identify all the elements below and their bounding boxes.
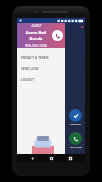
button[interactable]: Home (47, 154, 55, 162)
staticText: PRIVACY & TERMS (21, 56, 49, 60)
button[interactable]: SEND LOGS (17, 66, 65, 71)
button[interactable]: PRIVACY & TERMS (17, 55, 65, 60)
button[interactable]: Back (28, 154, 36, 162)
button[interactable]: AGENCY (17, 23, 65, 48)
button[interactable]: CHECK IN (69, 109, 82, 126)
button[interactable]: Call agency (52, 30, 63, 41)
button[interactable]: CALL NOW (69, 132, 82, 149)
staticText: AGENCY (31, 24, 42, 28)
staticText: LOGOUT (21, 78, 35, 82)
staticText: 909-555-1234 (25, 43, 47, 48)
staticText: SEND LOGS (21, 67, 39, 71)
button[interactable]: Recents (66, 154, 74, 162)
staticText: Acme Bail Bonds (20, 30, 52, 42)
staticText: CHECK IN (70, 123, 81, 126)
staticText: CALL NOW (70, 146, 82, 149)
button[interactable]: LOGOUT (17, 77, 65, 82)
